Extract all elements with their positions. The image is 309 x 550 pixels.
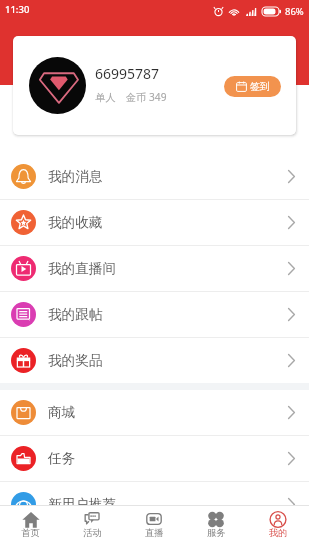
staticText: 服务: [207, 527, 226, 539]
staticText: 新用户推荐: [48, 496, 116, 513]
button[interactable]: 任务: [0, 436, 309, 481]
staticText: 首页: [21, 527, 40, 539]
button[interactable]: 新用户推荐: [0, 482, 309, 527]
button[interactable]: 我的收藏: [0, 200, 309, 245]
button[interactable]: 我的消息: [0, 154, 309, 199]
button[interactable]: 我的跟帖: [0, 292, 309, 337]
staticText: 我的消息: [48, 168, 103, 185]
staticText: 任务: [48, 450, 76, 467]
staticText: 我的跟帖: [48, 306, 103, 323]
staticText: 金币 349: [126, 90, 167, 104]
staticText: 86%: [285, 5, 304, 18]
staticText: 活动: [83, 527, 102, 539]
button[interactable]: 商城: [0, 390, 309, 435]
staticText: 签到: [250, 80, 270, 93]
button[interactable]: 签到: [224, 76, 281, 97]
button[interactable]: Live: [123, 506, 185, 550]
staticText: 单人: [95, 91, 116, 104]
staticText: 我的: [269, 527, 288, 539]
staticText: 直播: [145, 527, 164, 539]
button[interactable]: 我的奖品: [0, 338, 309, 383]
staticText: 我的收藏: [48, 214, 103, 231]
staticText: 商城: [48, 404, 76, 421]
button[interactable]: Activity: [61, 506, 123, 550]
button[interactable]: Home: [0, 506, 61, 550]
staticText: 11:30: [5, 3, 30, 16]
staticText: 我的直播间: [48, 260, 116, 277]
staticText: 我的奖品: [48, 352, 103, 369]
button[interactable]: Service: [185, 506, 247, 550]
staticText: 66995787: [95, 64, 160, 83]
button[interactable]: 我的直播间: [0, 246, 309, 291]
button[interactable]: Mine: [247, 506, 309, 550]
